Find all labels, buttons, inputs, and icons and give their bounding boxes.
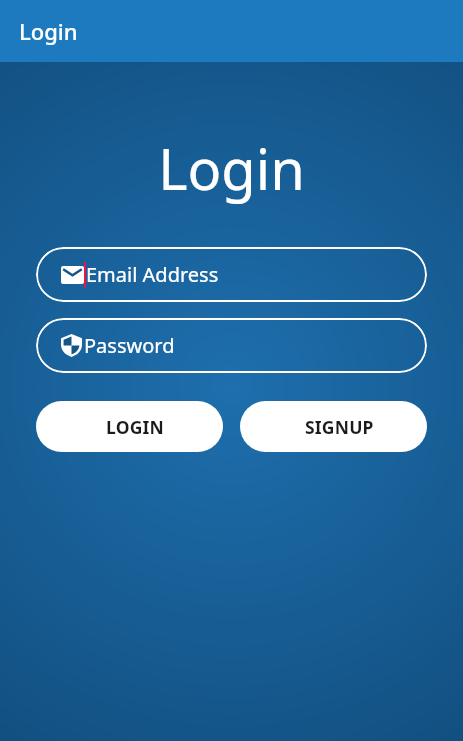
- staticText: Login: [0, 130, 463, 206]
- staticText: Email Address: [86, 261, 219, 288]
- button[interactable]: Password: [36, 318, 427, 373]
- staticText: LOGIN: [106, 415, 164, 439]
- button[interactable]: LOGIN: [36, 401, 223, 452]
- button[interactable]: SIGNUP: [240, 401, 427, 452]
- staticText: Login: [19, 16, 78, 46]
- staticText: SIGNUP: [305, 415, 374, 439]
- staticText: Password: [84, 332, 175, 359]
- button[interactable]: Login: [0, 0, 463, 62]
- button[interactable]: Email Address: [36, 247, 427, 302]
